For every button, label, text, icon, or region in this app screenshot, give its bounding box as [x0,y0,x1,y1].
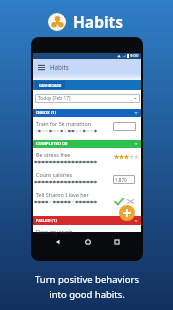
staticText: Count calories [36,171,73,178]
button[interactable]: Add habit [119,205,135,221]
staticText: INBOX (1) [36,110,57,116]
button[interactable]: Dismiss [127,199,134,204]
button[interactable]: Floss my teeth [33,225,141,232]
staticText: Train for 5k marathon [36,120,92,127]
staticText: 1,870 [115,177,127,183]
button[interactable]: Value input [113,122,136,131]
button[interactable]: Open navigation menu [33,59,141,80]
other: Open navigation menu [38,64,45,71]
staticText: Tell Sharon I love her [36,191,89,198]
staticText: Today [Feb 17] [38,95,71,102]
staticText: into good habits. [49,288,125,301]
button[interactable]: FAILED (1) [33,216,141,225]
button[interactable]: Tell Sharon I love her [33,188,141,216]
button[interactable]: 1,870 [113,175,135,184]
staticText: Turn positive behaviors [35,273,139,286]
button[interactable]: COMPLETED (3) [33,140,141,148]
staticText: DASHBOARD [39,83,62,88]
button[interactable]: Recent apps [111,236,122,247]
staticText: Be stress free [36,151,71,158]
staticText: 9:00 [130,53,139,59]
button[interactable]: Mark done [114,198,124,205]
button[interactable]: Home [82,236,93,247]
staticText: Floss my teeth [36,228,73,235]
button[interactable]: Today [Feb 17] [35,94,140,103]
staticText: COMPLETED (3) [36,141,68,147]
staticText: Habits [73,11,124,32]
staticText: FAILED (1) [36,218,57,224]
button[interactable]: Be stress free [33,148,141,168]
button[interactable]: Back [52,236,63,247]
button[interactable]: Train for 5k marathon [33,117,141,140]
button[interactable]: DASHBOARD [35,81,65,89]
staticText: Habits [50,63,69,71]
button[interactable]: INBOX (1) [33,109,141,117]
button[interactable]: Count calories [33,168,141,188]
